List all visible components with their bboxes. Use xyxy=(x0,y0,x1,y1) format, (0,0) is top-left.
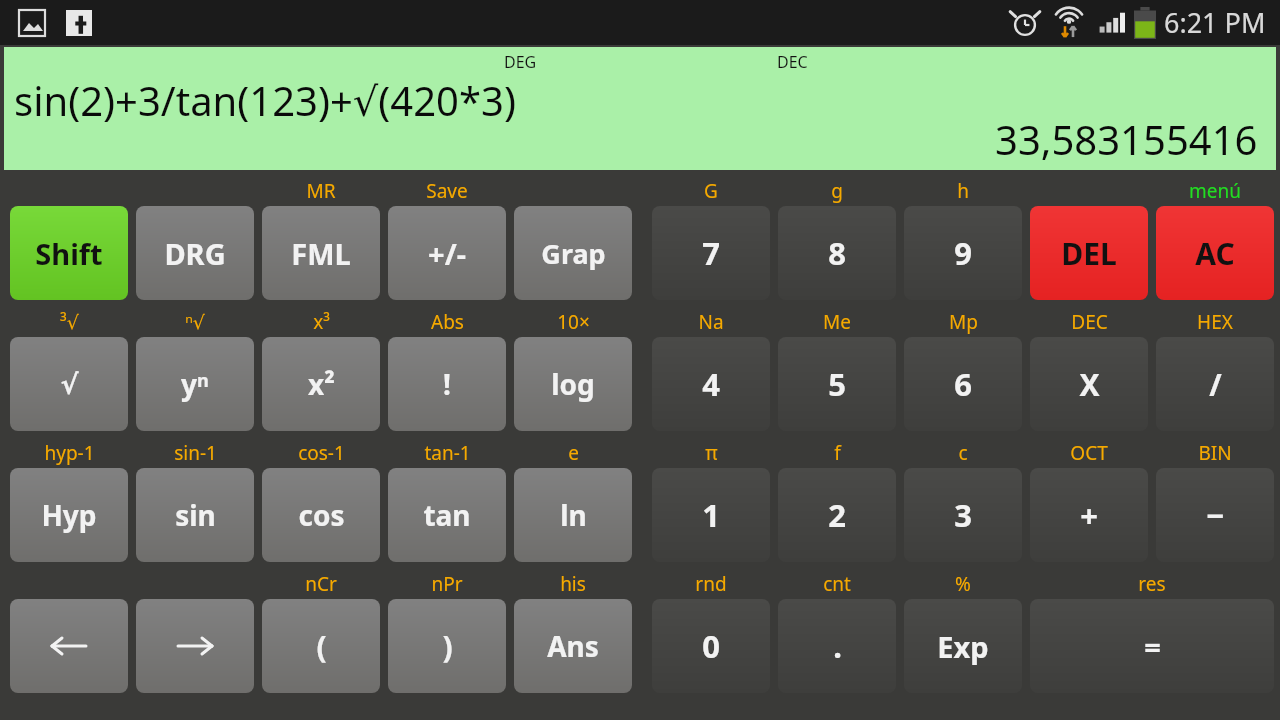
staticText: / xyxy=(1209,364,1222,405)
button[interactable]: 6 xyxy=(904,337,1022,431)
staticText: menú xyxy=(1189,178,1241,204)
staticText: DEC xyxy=(1071,309,1108,335)
staticText: x² xyxy=(308,365,335,403)
button[interactable]: 8 xyxy=(778,206,896,300)
button[interactable]: / xyxy=(1156,337,1274,431)
button[interactable]: log xyxy=(514,337,632,431)
staticText: Hyp xyxy=(41,496,97,534)
staticText: DEL xyxy=(1061,233,1117,274)
staticText: 6 xyxy=(954,363,972,405)
staticText: G xyxy=(704,178,718,204)
staticText: ) xyxy=(442,626,453,667)
button[interactable]: ( xyxy=(262,599,380,693)
staticText: ( xyxy=(316,626,327,667)
staticText: OCT xyxy=(1070,440,1108,466)
staticText: AC xyxy=(1195,233,1235,274)
staticText: e xyxy=(568,440,579,466)
button[interactable]: = xyxy=(1030,599,1274,693)
staticText: 10× xyxy=(557,309,590,335)
staticText: 7 xyxy=(702,232,720,274)
staticText: nCr xyxy=(305,571,337,597)
staticText: π xyxy=(705,440,718,466)
button[interactable]: tan xyxy=(388,468,506,562)
staticText: cos-1 xyxy=(298,440,345,466)
staticText: yⁿ xyxy=(181,365,209,403)
button[interactable]: Grap xyxy=(514,206,632,300)
staticText: ³√ xyxy=(60,309,79,335)
button[interactable]: 5 xyxy=(778,337,896,431)
staticText: FML xyxy=(291,234,351,273)
button[interactable]: ! xyxy=(388,337,506,431)
staticText: % xyxy=(955,571,971,597)
other: Move cursor right xyxy=(172,633,218,659)
button[interactable]: Move cursor left xyxy=(10,599,128,693)
staticText: ⁿ√ xyxy=(185,309,205,335)
button[interactable]: x² xyxy=(262,337,380,431)
button[interactable]: − xyxy=(1156,468,1274,562)
button[interactable]: cos xyxy=(262,468,380,562)
staticText: 6:21 PM xyxy=(1164,4,1266,41)
button[interactable]: Hyp xyxy=(10,468,128,562)
staticText: his xyxy=(560,571,586,597)
staticText: 1 xyxy=(702,494,720,536)
staticText: rnd xyxy=(695,571,727,597)
button[interactable]: 4 xyxy=(652,337,770,431)
button[interactable]: . xyxy=(778,599,896,693)
button[interactable]: ) xyxy=(388,599,506,693)
button[interactable]: X xyxy=(1030,337,1148,431)
staticText: Grap xyxy=(541,235,606,272)
button[interactable]: AC xyxy=(1156,206,1274,300)
button[interactable]: √ xyxy=(10,337,128,431)
button[interactable]: Exp xyxy=(904,599,1022,693)
button[interactable]: + xyxy=(1030,468,1148,562)
staticText: 8 xyxy=(828,232,846,274)
button[interactable]: Move cursor right xyxy=(136,599,254,693)
button[interactable]: FML xyxy=(262,206,380,300)
staticText: Exp xyxy=(937,627,989,666)
staticText: 5 xyxy=(828,363,846,405)
button[interactable]: 9 xyxy=(904,206,1022,300)
staticText: 9 xyxy=(954,232,972,274)
staticText: Me xyxy=(823,309,851,335)
staticText: Ans xyxy=(547,627,599,665)
staticText: − xyxy=(1206,494,1225,536)
staticText: cnt xyxy=(823,571,851,597)
staticText: Save xyxy=(426,178,468,204)
staticText: MR xyxy=(306,178,336,204)
staticText: sin xyxy=(175,496,216,534)
button[interactable]: 0 xyxy=(652,599,770,693)
button[interactable]: sin xyxy=(136,468,254,562)
staticText: sin-1 xyxy=(174,440,217,466)
button[interactable]: DEL xyxy=(1030,206,1148,300)
staticText: f xyxy=(834,440,841,466)
other: Move cursor left xyxy=(46,633,92,659)
staticText: g xyxy=(831,178,843,204)
button[interactable]: 1 xyxy=(652,468,770,562)
staticText: ! xyxy=(443,365,451,403)
other: Wi-Fi xyxy=(1054,7,1084,39)
staticText: nPr xyxy=(431,571,463,597)
staticText: Abs xyxy=(431,309,464,335)
staticText: DEC xyxy=(777,51,808,73)
other: Battery xyxy=(1134,7,1156,39)
button[interactable]: 7 xyxy=(652,206,770,300)
button[interactable]: Shift xyxy=(10,206,128,300)
staticText: sin(2)+3/tan(123)+√(420*3) xyxy=(14,73,516,127)
staticText: . xyxy=(833,625,842,667)
button[interactable]: ln xyxy=(514,468,632,562)
button[interactable]: 2 xyxy=(778,468,896,562)
button[interactable]: Ans xyxy=(514,599,632,693)
button[interactable]: yⁿ xyxy=(136,337,254,431)
staticText: +/- xyxy=(428,234,466,273)
staticText: Shift xyxy=(35,234,103,273)
staticText: + xyxy=(1080,494,1098,536)
staticText: tan xyxy=(423,496,471,534)
staticText: tan-1 xyxy=(424,440,471,466)
button[interactable]: 3 xyxy=(904,468,1022,562)
button[interactable]: DRG xyxy=(136,206,254,300)
staticText: Na xyxy=(698,309,724,335)
staticText: ln xyxy=(560,496,587,534)
button[interactable]: +/- xyxy=(388,206,506,300)
staticText: X xyxy=(1079,364,1100,405)
staticText: 0 xyxy=(702,625,720,667)
